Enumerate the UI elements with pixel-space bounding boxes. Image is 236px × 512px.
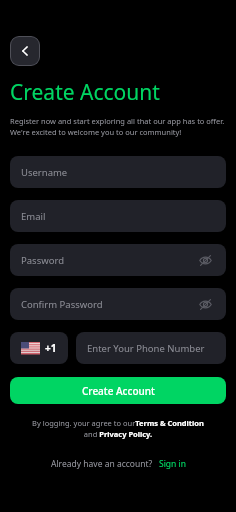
button[interactable]: Toggle password visibility: [195, 250, 215, 270]
staticText: Sign in: [159, 458, 186, 470]
staticText: Password: [21, 254, 64, 267]
button[interactable]: Select country code: [10, 332, 68, 364]
button[interactable]: Create Account: [10, 377, 226, 404]
staticText: By logging. your agree to ourTerms & Con…: [10, 418, 226, 439]
button[interactable]: Enter Your Phone Number: [76, 332, 226, 364]
staticText: Register now and start exploring all tha…: [10, 116, 225, 137]
staticText: +1: [45, 341, 57, 355]
button[interactable]: Password: [10, 244, 226, 276]
button[interactable]: Back: [10, 36, 40, 66]
staticText: Confirm Password: [21, 298, 103, 311]
staticText: Username: [21, 166, 68, 179]
button[interactable]: Sign in: [159, 458, 186, 470]
staticText: Create Account: [10, 78, 160, 107]
staticText: Already have an account?: [51, 458, 153, 470]
staticText: Enter Your Phone Number: [87, 342, 205, 355]
button[interactable]: Username: [10, 156, 226, 188]
button[interactable]: Confirm Password: [10, 288, 226, 320]
button[interactable]: Email: [10, 200, 226, 232]
staticText: Email: [21, 210, 46, 223]
button[interactable]: Toggle password visibility: [195, 294, 215, 314]
staticText: Create Account: [82, 384, 155, 398]
